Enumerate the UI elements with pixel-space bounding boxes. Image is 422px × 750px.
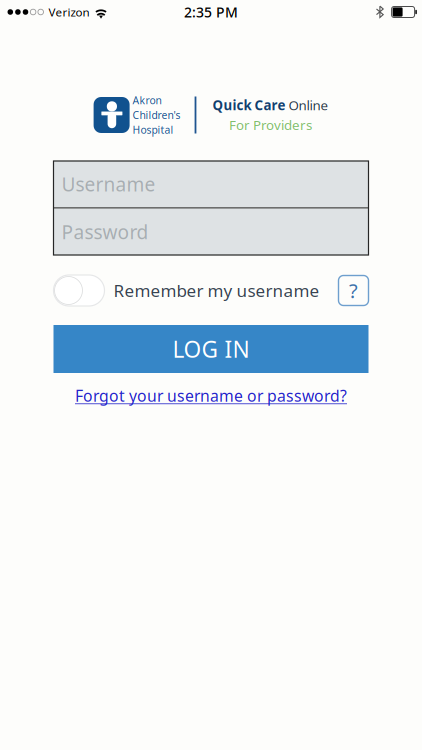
staticText: Verizon [48, 4, 89, 20]
staticText: ? [349, 277, 358, 304]
staticText: 2:35 PM [184, 2, 238, 22]
button[interactable]: Forgot your username or password? [75, 385, 347, 406]
staticText: Akron [133, 93, 162, 107]
button[interactable]: LOG IN [53, 325, 368, 373]
staticText: Remember my username [113, 279, 319, 302]
staticText: Children's [133, 108, 181, 122]
staticText: Forgot your username or password? [75, 385, 347, 406]
staticText: Hospital [133, 123, 174, 137]
button[interactable]: Remember my username [53, 275, 104, 306]
staticText: Username [61, 171, 155, 197]
button[interactable]: Help [338, 275, 368, 305]
staticText: Quick Care [212, 96, 285, 114]
staticText: For Providers [229, 116, 312, 134]
staticText: Password [61, 219, 148, 245]
staticText: Online [285, 96, 328, 114]
staticText: LOG IN [172, 334, 249, 364]
